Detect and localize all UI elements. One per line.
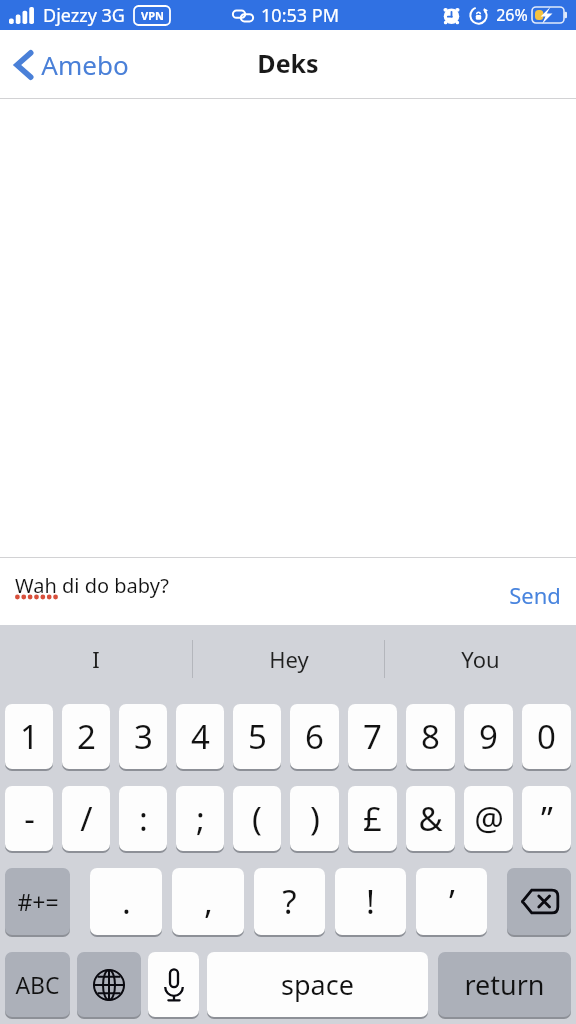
staticText: 26% xyxy=(496,4,528,26)
staticText: ’ xyxy=(449,879,455,924)
button[interactable]: I xyxy=(0,625,192,693)
staticText: You xyxy=(461,644,500,674)
staticText: ( xyxy=(252,796,262,841)
button[interactable]: Backspace xyxy=(507,868,571,935)
button[interactable]: 4 xyxy=(176,704,224,769)
button[interactable]: ! xyxy=(335,868,406,935)
staticText: Wah di do baby? xyxy=(15,572,169,599)
button[interactable]: £ xyxy=(348,786,397,851)
button[interactable]: : xyxy=(119,786,167,851)
button[interactable]: @ xyxy=(464,786,513,851)
button[interactable]: Send xyxy=(505,571,565,613)
staticText: VPN xyxy=(141,8,164,23)
staticText: 8 xyxy=(421,714,440,759)
button[interactable]: ? xyxy=(254,868,325,935)
button[interactable]: ’ xyxy=(416,868,487,935)
staticText: 1 xyxy=(20,714,39,759)
button[interactable]: 5 xyxy=(233,704,281,769)
button[interactable]: return xyxy=(438,952,571,1017)
button[interactable]: #+= xyxy=(5,868,70,935)
staticText: 4 xyxy=(191,714,210,759)
staticText: Amebo xyxy=(41,47,129,82)
button[interactable]: ; xyxy=(176,786,224,851)
staticText: - xyxy=(24,796,35,841)
staticText: space xyxy=(281,966,354,1003)
staticText: ? xyxy=(282,879,297,924)
staticText: , xyxy=(204,879,213,924)
button[interactable]: ABC xyxy=(5,952,70,1017)
button[interactable]: 8 xyxy=(406,704,455,769)
button[interactable]: 1 xyxy=(5,704,53,769)
staticText: Hey xyxy=(269,644,309,674)
staticText: & xyxy=(418,796,443,841)
button[interactable]: 0 xyxy=(522,704,571,769)
button[interactable]: / xyxy=(62,786,110,851)
staticText: ) xyxy=(310,796,320,841)
staticText: ” xyxy=(541,796,553,841)
staticText: @ xyxy=(474,796,504,841)
button[interactable]: 6 xyxy=(290,704,339,769)
staticText: . xyxy=(122,879,131,924)
button[interactable]: Hey xyxy=(193,625,384,693)
button[interactable]: - xyxy=(5,786,53,851)
button[interactable]: Amebo xyxy=(0,30,139,99)
staticText: Deks xyxy=(257,46,319,80)
button[interactable]: You xyxy=(385,625,576,693)
staticText: 5 xyxy=(248,714,267,759)
staticText: / xyxy=(80,796,93,841)
button[interactable]: ” xyxy=(522,786,571,851)
staticText: ! xyxy=(366,879,375,924)
button[interactable]: 7 xyxy=(348,704,397,769)
button[interactable]: space xyxy=(207,952,428,1017)
staticText: ABC xyxy=(15,969,60,1000)
staticText: £ xyxy=(363,796,382,841)
button[interactable]: & xyxy=(406,786,455,851)
staticText: Send xyxy=(509,580,561,610)
staticText: 6 xyxy=(305,714,324,759)
staticText: ; xyxy=(196,796,205,841)
staticText: return xyxy=(464,966,545,1003)
button[interactable]: , xyxy=(172,868,244,935)
button[interactable]: ) xyxy=(290,786,339,851)
button[interactable]: 3 xyxy=(119,704,167,769)
button[interactable]: 2 xyxy=(62,704,110,769)
staticText: 10:53 PM xyxy=(261,3,339,28)
button[interactable]: 9 xyxy=(464,704,513,769)
button[interactable]: Dictate xyxy=(148,952,199,1017)
staticText: : xyxy=(139,796,148,841)
staticText: 2 xyxy=(77,714,96,759)
button[interactable]: Change keyboard xyxy=(77,952,141,1017)
button[interactable]: . xyxy=(90,868,162,935)
staticText: Djezzy 3G xyxy=(43,3,125,28)
staticText: 7 xyxy=(363,714,382,759)
button[interactable]: ( xyxy=(233,786,281,851)
staticText: I xyxy=(92,644,100,674)
staticText: 3 xyxy=(134,714,153,759)
staticText: #+= xyxy=(17,886,59,917)
staticText: 0 xyxy=(537,714,556,759)
staticText: 9 xyxy=(479,714,498,759)
